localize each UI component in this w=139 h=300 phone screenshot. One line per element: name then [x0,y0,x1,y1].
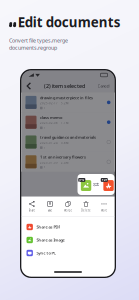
button[interactable]: drawing masterpiece in files [21,92,114,112]
staticText: Cancel [97,83,109,89]
staticText: Share as PDF [36,224,60,230]
button[interactable]: Merge [59,201,77,212]
staticText: 1 [44,126,46,130]
staticText: Share as Image [36,237,64,243]
staticText: 2025-01-24 3.8M [40,141,68,145]
button[interactable]: Share as PDF [21,220,114,233]
button[interactable]: travel guidance and materials [21,132,114,152]
staticText: Save [47,209,52,212]
staticText: Sync to PC [36,250,56,256]
staticText: Share [28,209,35,212]
button[interactable]: More [95,201,113,212]
staticText: 1 [44,166,46,169]
button[interactable]: 1 st anniversary flowers [21,152,114,172]
staticText: PDF [102,178,107,182]
staticText: 1 st anniversary flowers [40,154,86,160]
staticText: 1 [44,106,46,110]
button[interactable]: Sync to PC [21,246,114,259]
staticText: More [100,209,107,212]
staticText: travel guidance and materials [40,135,96,140]
staticText: drawing masterpiece in files [40,95,93,100]
staticText: class memo [40,115,62,120]
staticText: JPG [79,178,84,182]
button[interactable]: Save [41,201,59,212]
button[interactable]: JPG [77,174,114,195]
staticText: Merge [63,209,72,212]
button[interactable]: Delete [77,201,95,212]
staticText: Convert file types,merge documents,regro… [9,37,68,51]
staticText: 2025-02-17 5.2M [40,101,68,105]
staticText: 1 [44,146,46,149]
button[interactable]: Share [23,201,41,212]
button[interactable]: class memo [21,112,114,132]
staticText: (2) item selected [44,82,85,90]
staticText: 2025-02-08 1.1M [40,121,68,125]
button[interactable]: Share as Image [21,233,114,246]
staticText: Edit documents [18,13,121,31]
staticText: 2025-01-09 2.4M [40,161,68,164]
staticText: Delete [81,209,91,212]
